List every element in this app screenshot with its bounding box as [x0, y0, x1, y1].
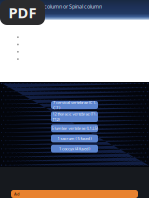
- staticText: 5 lumbar vertebrae (L1-L5): [51, 126, 97, 131]
- button[interactable]: Advertisement: [0, 190, 138, 198]
- staticText: 1 sacrum ( 5 fused ): [57, 136, 91, 141]
- staticText: PDF: [8, 3, 36, 22]
- button[interactable]: PDF: [0, 0, 45, 25]
- staticText: 7 cervical vertebrae (C1-C7 ): [53, 100, 96, 110]
- staticText: Vertebral column or Spinal column: [21, 3, 102, 10]
- staticText: Ad: [14, 191, 20, 197]
- staticText: 12 thoracic vertebrae (T1-T12): [52, 111, 96, 122]
- staticText: 1 coccyx (4 fused ): [59, 146, 90, 151]
